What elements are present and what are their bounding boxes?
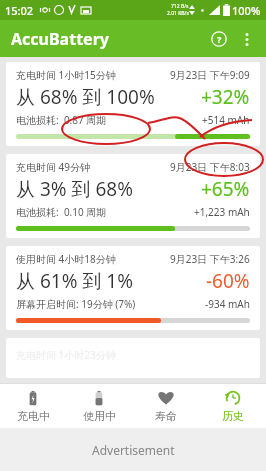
staticText: ? bbox=[217, 33, 222, 45]
button[interactable]: 寿命 bbox=[132, 384, 199, 428]
staticText: 15:02 bbox=[5, 3, 34, 18]
button[interactable]: 充电中 bbox=[0, 384, 66, 428]
staticText: -60% bbox=[206, 268, 250, 294]
button[interactable]: 充电时间 1小时15分钟 bbox=[6, 62, 260, 146]
staticText: 电池损耗: 0.87 周期 bbox=[16, 113, 107, 127]
staticText: +32% bbox=[201, 84, 250, 110]
staticText: 寿命 bbox=[155, 409, 177, 423]
staticText: 使用时间 4小时18分钟 bbox=[16, 252, 116, 266]
staticText: 充电中 bbox=[17, 409, 50, 423]
staticText: 使用中 bbox=[83, 409, 116, 423]
staticText: 从 3% 到 68% bbox=[16, 176, 134, 202]
button[interactable]: 历史 bbox=[199, 384, 266, 428]
staticText: 9月23日 下午3:26 bbox=[170, 252, 250, 266]
button[interactable]: 使用中 bbox=[66, 384, 132, 428]
staticText: AccuBattery bbox=[11, 28, 109, 50]
staticText: 从 68% 到 100% bbox=[16, 84, 155, 110]
staticText: 9月23日 下午8:03 bbox=[170, 160, 250, 174]
staticText: 历史 bbox=[222, 409, 244, 423]
staticText: 从 61% 到 1% bbox=[16, 268, 134, 294]
staticText: +65% bbox=[201, 176, 250, 202]
staticText: -934 mAh bbox=[205, 297, 250, 311]
staticText: 屏幕开启时间: 19分钟 (7%) bbox=[16, 297, 136, 311]
button[interactable]: 使用时间 4小时18分钟 bbox=[6, 246, 260, 330]
button[interactable]: More options bbox=[234, 26, 260, 52]
staticText: 充电时间 49分钟 bbox=[16, 160, 91, 174]
staticText: 充电时间 1小时15分钟 bbox=[16, 68, 116, 82]
staticText: Advertisement bbox=[92, 442, 175, 458]
staticText: 712 B/s bbox=[171, 3, 189, 10]
button[interactable]: 充电时间 49分钟 bbox=[6, 154, 260, 238]
staticText: +1,223 mAh bbox=[194, 205, 250, 219]
staticText: 充电时间 1小时23分钟 bbox=[16, 348, 116, 362]
staticText: 2.01 KB/s bbox=[167, 10, 189, 17]
staticText: 9月23日 下午9:09 bbox=[170, 68, 250, 82]
staticText: 电池损耗: 0.10 周期 bbox=[16, 205, 107, 219]
staticText: +514 mAh bbox=[202, 113, 250, 127]
button[interactable]: Help bbox=[204, 24, 234, 54]
staticText: 100% bbox=[232, 3, 261, 18]
